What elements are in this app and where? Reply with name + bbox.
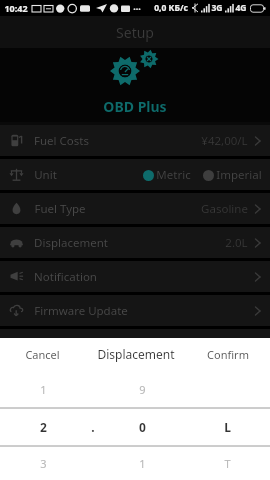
staticText: Cancel — [25, 347, 60, 362]
button[interactable]: Metric — [143, 167, 191, 183]
staticText: ··· — [133, 2, 141, 14]
button[interactable]: Firmware update — [0, 295, 270, 326]
button[interactable]: L — [185, 408, 270, 446]
staticText: Imperial — [216, 167, 262, 183]
button[interactable]: Displacement — [0, 227, 270, 258]
button[interactable]: About — [0, 329, 270, 360]
button[interactable]: 0 — [100, 408, 185, 446]
staticText: Gasoline — [201, 201, 248, 217]
button[interactable]: 2 — [0, 408, 86, 446]
staticText: L — [224, 419, 231, 435]
button[interactable]: 3 — [0, 446, 86, 480]
other: Displacement — [9, 235, 24, 250]
other: About — [9, 337, 24, 352]
staticText: Unit — [34, 167, 57, 183]
button[interactable]: Notification — [0, 261, 270, 292]
other: Fuel costs — [9, 133, 24, 148]
staticText: 9 — [139, 382, 146, 397]
staticText: About — [34, 337, 67, 353]
staticText: T — [224, 456, 231, 471]
staticText: 0 — [139, 419, 146, 435]
staticText: . — [91, 419, 95, 435]
staticText: Displacement — [34, 235, 108, 251]
other: Fuel type — [9, 201, 24, 216]
staticText: Fuel Costs — [34, 133, 89, 149]
button[interactable]: Fuel type — [0, 193, 270, 224]
button[interactable]: Cancel — [0, 338, 85, 370]
button[interactable]: 1 — [100, 446, 185, 480]
other: Firmware update — [9, 303, 24, 318]
other: Unit — [9, 167, 24, 182]
staticText: Notification — [34, 269, 97, 285]
button[interactable]: Confirm — [186, 338, 270, 370]
staticText: OBD Plus — [103, 97, 167, 116]
button[interactable]: T — [185, 446, 270, 480]
staticText: 1 — [40, 382, 47, 397]
staticText: ¥42,00/L — [201, 133, 248, 149]
staticText: Metric — [156, 167, 191, 183]
other: Notification — [9, 269, 24, 284]
button[interactable]: 9 — [100, 370, 185, 408]
staticText: 10:42 — [4, 2, 28, 14]
staticText: 1 — [139, 456, 146, 471]
staticText: 0,0 КБ/c — [154, 2, 188, 14]
staticText: Fuel Type — [34, 201, 86, 217]
button[interactable] — [185, 370, 270, 408]
staticText: Firmware Update — [34, 303, 128, 319]
staticText: 3 — [40, 456, 47, 471]
staticText: 4G — [235, 2, 247, 14]
staticText: 2 — [40, 419, 47, 435]
staticText: 2.0L — [225, 235, 248, 251]
staticText: Confirm — [207, 347, 249, 362]
button[interactable]: Fuel costs — [0, 125, 270, 156]
button[interactable]: 1 — [0, 370, 86, 408]
staticText: 3G — [211, 2, 223, 14]
button[interactable]: Imperial — [203, 167, 262, 183]
staticText: Setup — [116, 23, 154, 42]
staticText: Displacement — [97, 346, 175, 362]
